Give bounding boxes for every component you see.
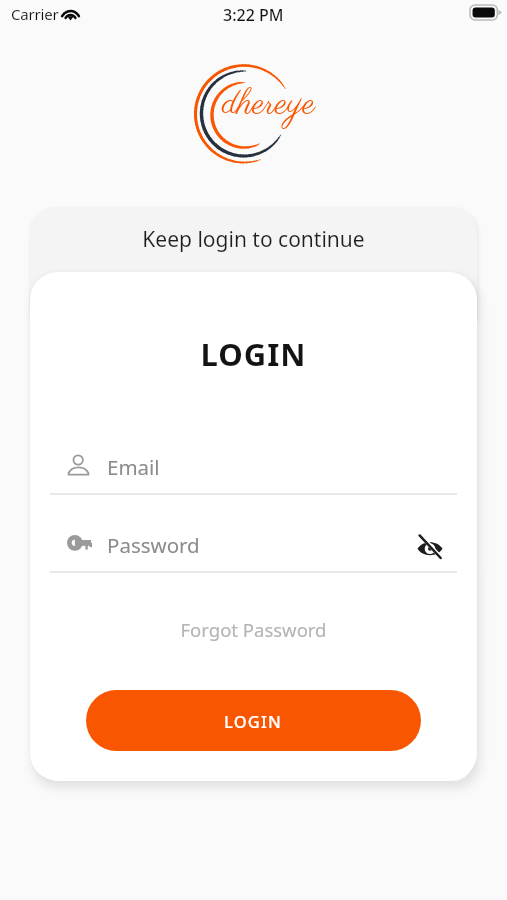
staticText: LOGIN xyxy=(30,333,477,375)
button[interactable]: LOGIN xyxy=(86,690,421,751)
button[interactable]: Forgot Password xyxy=(30,617,477,642)
staticText: Keep login to continue xyxy=(30,225,477,254)
button[interactable]: Password xyxy=(30,525,477,561)
staticText: Carrier xyxy=(11,4,59,24)
button[interactable]: Email xyxy=(30,448,477,482)
staticText: dhereye xyxy=(222,81,316,129)
staticText: Password xyxy=(107,531,200,559)
staticText: Email xyxy=(107,453,160,481)
staticText: LOGIN xyxy=(224,710,283,732)
button[interactable]: Show password xyxy=(410,526,450,566)
staticText: 3:22 PM xyxy=(223,4,284,26)
